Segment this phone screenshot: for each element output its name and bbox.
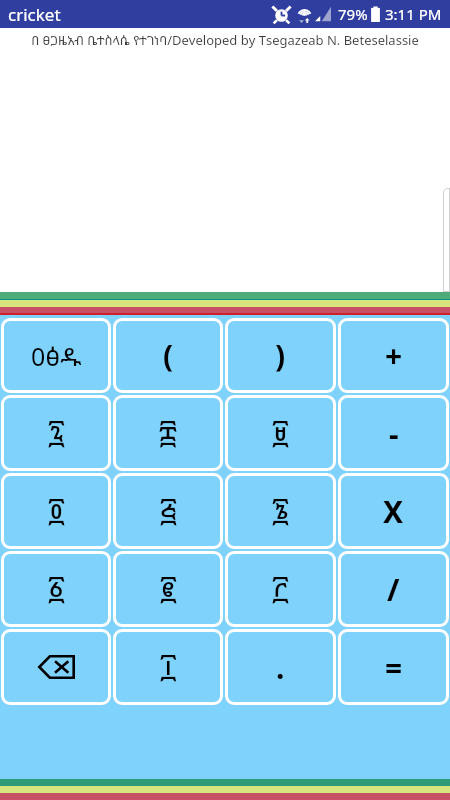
button[interactable]: - [338, 395, 449, 471]
staticText: - [389, 413, 399, 454]
other: Wi-Fi [297, 6, 312, 23]
other: Battery [370, 6, 381, 22]
button[interactable]: = [338, 629, 449, 705]
staticText: ፫ [272, 569, 289, 610]
button[interactable]: X [338, 473, 449, 549]
other: Signal [315, 6, 331, 22]
staticText: ፮ [272, 491, 289, 532]
staticText: / [387, 569, 400, 610]
staticText: ፯ [48, 413, 65, 454]
staticText: + [385, 335, 403, 376]
staticText: X [383, 491, 404, 532]
staticText: 79% [338, 4, 368, 24]
staticText: 0ፅዱ [31, 339, 82, 373]
staticText: ) [275, 335, 286, 376]
staticText: ፩ [48, 569, 65, 610]
button[interactable]: ) [225, 318, 336, 393]
staticText: 3:11 PM [385, 4, 442, 24]
button[interactable]: / [338, 551, 449, 627]
staticText: ፬ [48, 491, 65, 532]
staticText: . [276, 647, 285, 688]
button[interactable]: Backspace [1, 629, 111, 705]
staticText: ፲ [160, 647, 177, 688]
staticText: ፰ [159, 413, 177, 454]
button[interactable]: 0ፅዱ [1, 318, 111, 393]
staticText: cricket [8, 3, 61, 26]
button[interactable]: ፮ [225, 473, 336, 549]
button[interactable]: + [338, 318, 449, 393]
button[interactable]: ፲ [113, 629, 223, 705]
button[interactable]: ( [113, 318, 223, 393]
button[interactable]: ፫ [225, 551, 336, 627]
button[interactable]: ፯ [1, 395, 111, 471]
button[interactable]: ፬ [1, 473, 111, 549]
button[interactable]: ፰ [113, 395, 223, 471]
staticText: ፱ [272, 413, 289, 454]
staticText: ፪ [160, 569, 177, 610]
staticText: ፭ [160, 491, 177, 532]
button[interactable]: ፭ [113, 473, 223, 549]
other: Alarm [273, 6, 290, 23]
button[interactable]: ፪ [113, 551, 223, 627]
button[interactable]: ፱ [225, 395, 336, 471]
staticText: ( [163, 335, 174, 376]
staticText: = [385, 647, 403, 688]
button[interactable]: . [225, 629, 336, 705]
button[interactable]: ፩ [1, 551, 111, 627]
other: Backspace [38, 655, 75, 679]
staticText: በ ፀጋዜአብ ቤተስላሴ የተገነባ/Developed by Tsegaze… [31, 31, 419, 49]
